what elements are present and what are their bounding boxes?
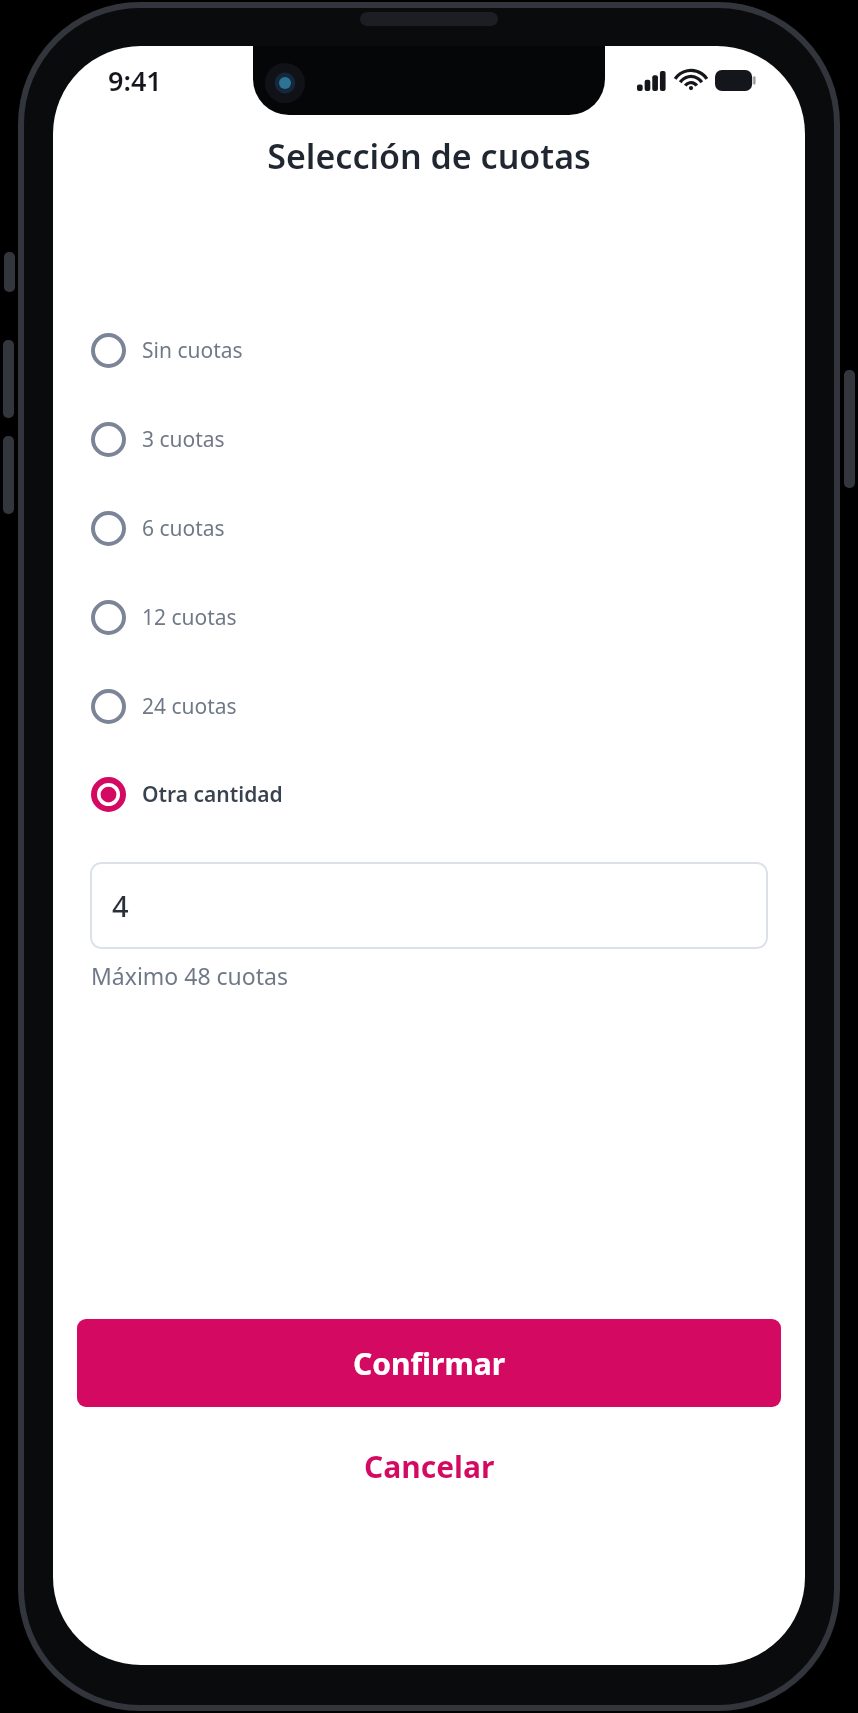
staticText: Sin cuotas bbox=[142, 336, 243, 365]
staticText: 3 cuotas bbox=[142, 425, 225, 454]
staticText: 9:41 bbox=[108, 62, 162, 99]
button[interactable]: Cancelar bbox=[53, 1407, 805, 1525]
button[interactable]: 6 cuotas bbox=[53, 484, 805, 573]
staticText: 6 cuotas bbox=[142, 514, 225, 543]
staticText: 4 bbox=[112, 886, 129, 925]
button[interactable]: Sin cuotas bbox=[53, 306, 805, 395]
staticText: Confirmar bbox=[353, 1343, 506, 1384]
button[interactable]: Confirmar bbox=[77, 1319, 781, 1407]
staticText: 12 cuotas bbox=[142, 603, 237, 632]
staticText: Cancelar bbox=[364, 1446, 495, 1487]
button[interactable]: 12 cuotas bbox=[53, 573, 805, 662]
staticText: 24 cuotas bbox=[142, 692, 237, 721]
button[interactable]: Otra cantidad bbox=[53, 750, 805, 838]
button[interactable]: Cantidad de cuotas bbox=[90, 862, 768, 949]
button[interactable]: 3 cuotas bbox=[53, 395, 805, 484]
staticText: Selección de cuotas bbox=[267, 133, 591, 179]
button[interactable]: 24 cuotas bbox=[53, 662, 805, 750]
staticText: Máximo 48 cuotas bbox=[91, 960, 288, 991]
staticText: Otra cantidad bbox=[142, 780, 283, 809]
